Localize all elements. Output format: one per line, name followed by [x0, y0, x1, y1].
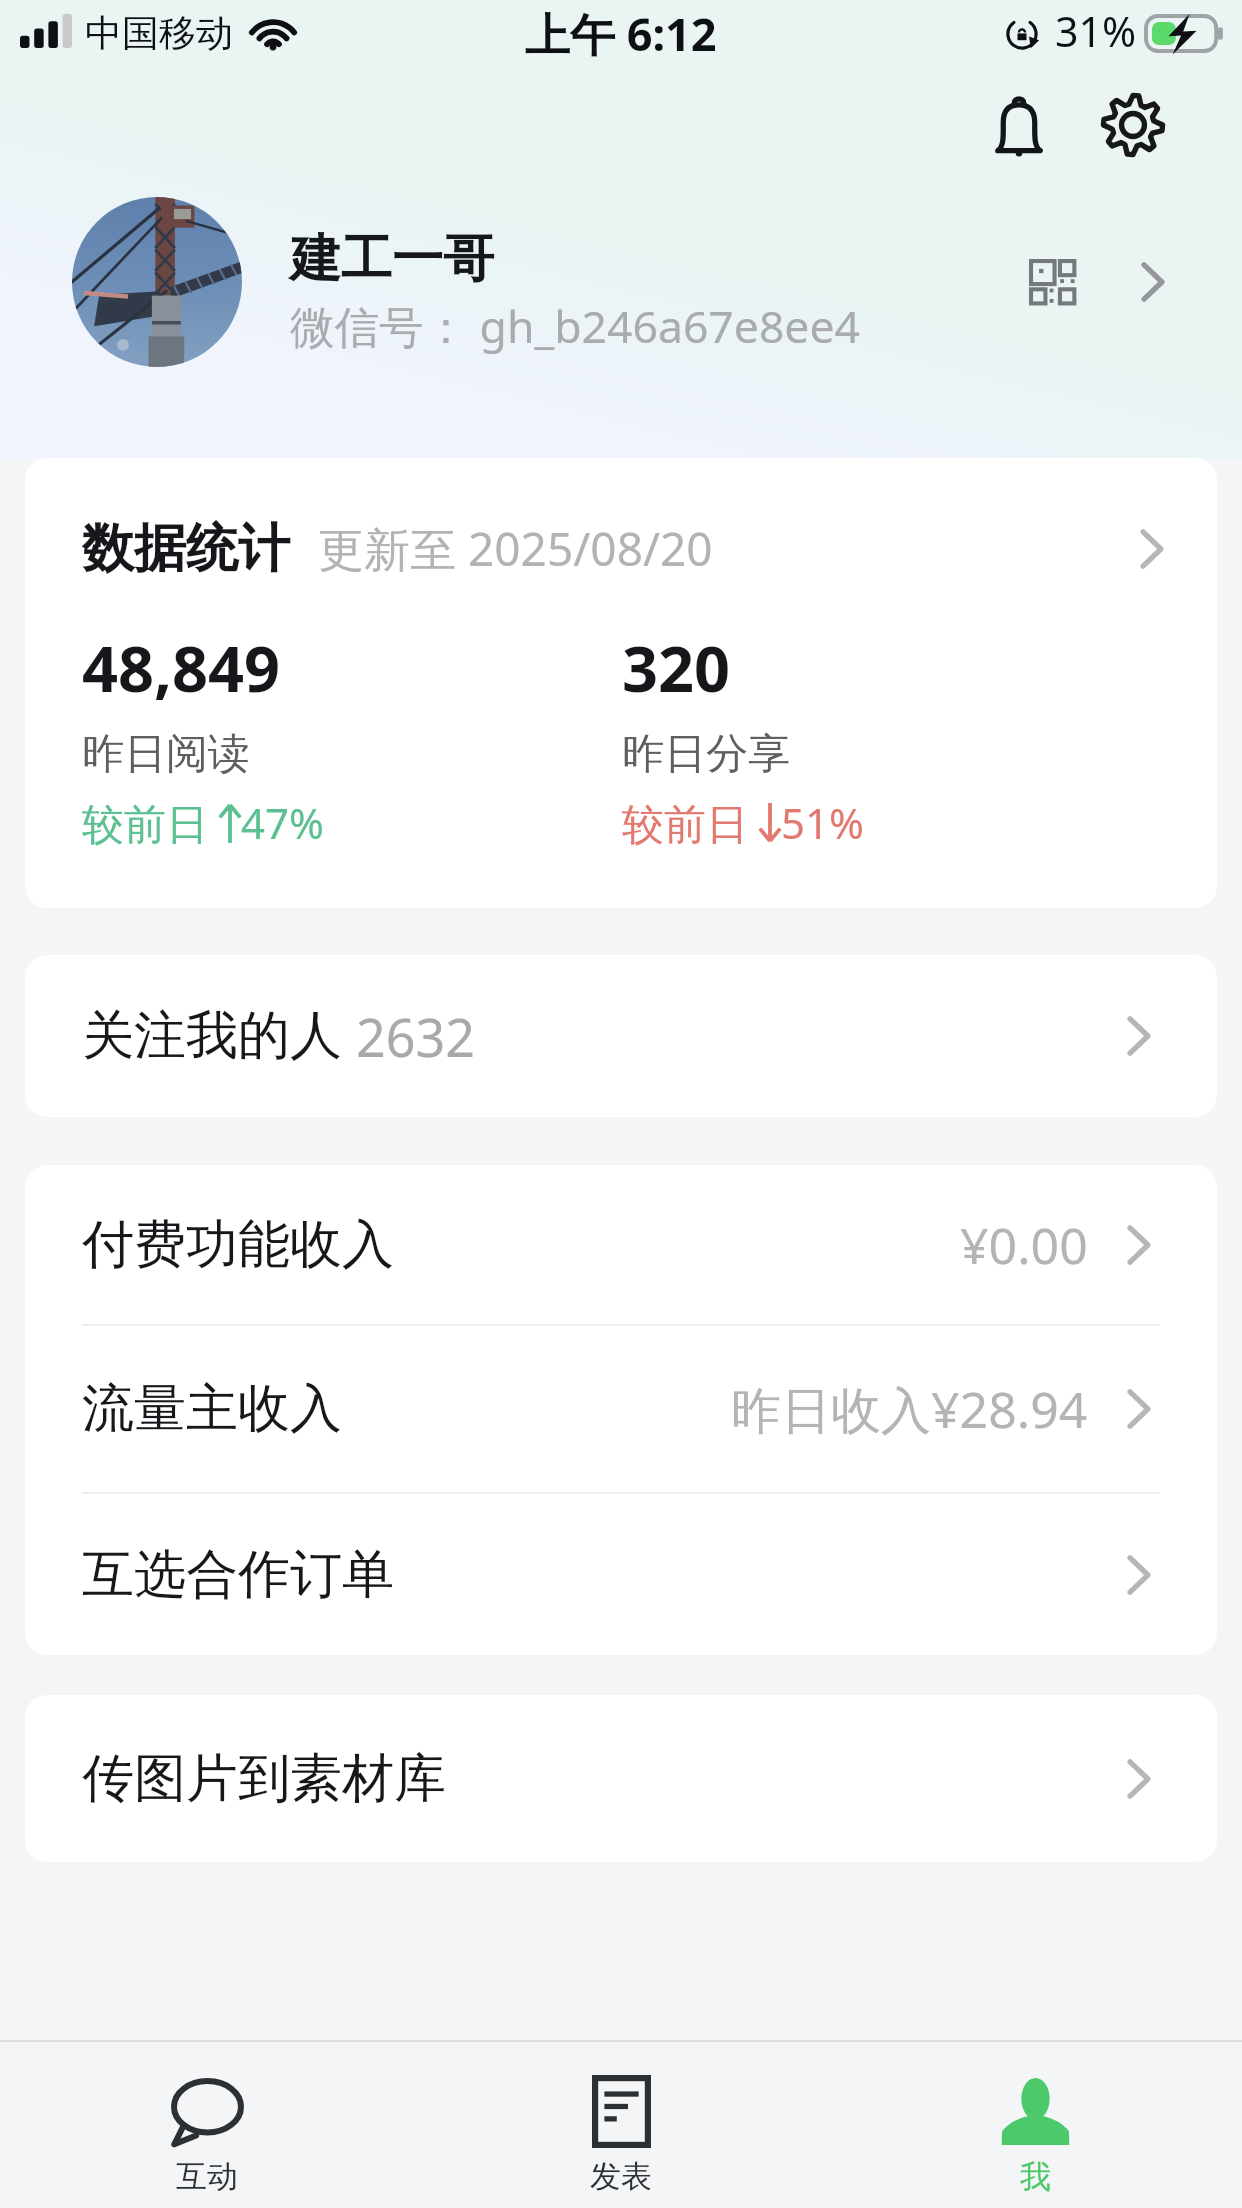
staticText: 2632 — [356, 1001, 475, 1072]
button[interactable]: 关注我的人 — [25, 955, 1217, 1117]
staticText: 互动 — [176, 2157, 238, 2196]
staticText: 昨日阅读 — [82, 728, 250, 781]
button[interactable]: 发表 — [414, 2042, 828, 2208]
staticText: 更新至 2025/08/20 — [318, 517, 713, 580]
staticText: 微信号： gh_b246a67e8ee4 — [290, 295, 861, 356]
staticText: 昨日收入¥28.94 — [731, 1375, 1088, 1443]
staticText: 31% — [1055, 3, 1136, 59]
staticText: 发表 — [590, 2157, 652, 2196]
button[interactable]: 我 — [828, 2042, 1242, 2208]
button[interactable]: 互动 — [0, 2042, 414, 2208]
staticText: 51% — [781, 794, 864, 851]
button[interactable]: 建工一哥 — [0, 192, 1242, 372]
button[interactable]: 流量主收入 — [25, 1326, 1217, 1492]
staticText: 320 — [622, 625, 731, 711]
staticText: 中国移动 — [85, 10, 233, 57]
button[interactable]: 互选合作订单 — [25, 1494, 1217, 1655]
button[interactable]: 数据统计 — [25, 458, 1217, 625]
staticText: 互选合作订单 — [82, 1542, 394, 1608]
staticText: 传图片到素材库 — [82, 1746, 446, 1812]
staticText: 我 — [1020, 2157, 1051, 2196]
staticText: 较前日 — [82, 794, 219, 851]
staticText: 上午 6:12 — [525, 3, 717, 64]
staticText: 48,849 — [82, 625, 281, 711]
staticText: 流量主收入 — [82, 1376, 342, 1442]
staticText: 关注我的人 — [82, 1003, 342, 1069]
staticText: 付费功能收入 — [82, 1212, 394, 1278]
button[interactable]: 传图片到素材库 — [25, 1695, 1217, 1862]
staticText: 建工一哥 — [290, 227, 494, 291]
staticText: 47% — [241, 794, 324, 851]
staticText: 较前日 — [622, 794, 759, 851]
staticText: 数据统计 — [82, 516, 290, 582]
staticText: ¥0.00 — [960, 1211, 1088, 1279]
button[interactable]: Settings — [1090, 82, 1176, 168]
button[interactable]: 付费功能收入 — [25, 1165, 1217, 1324]
button[interactable]: Notifications — [976, 82, 1062, 168]
staticText: 昨日分享 — [622, 728, 790, 781]
